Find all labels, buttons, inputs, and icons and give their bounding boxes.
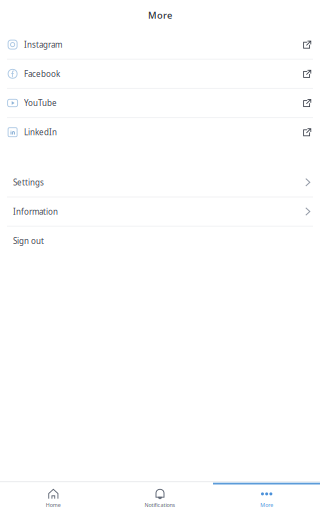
button[interactable]: Home xyxy=(0,481,107,512)
staticText: Notifications xyxy=(144,501,175,509)
button[interactable]: Settings xyxy=(0,168,320,196)
staticText: More xyxy=(148,9,172,21)
staticText: YouTube xyxy=(24,98,57,108)
button[interactable]: Information xyxy=(0,197,320,226)
staticText: Information xyxy=(13,206,58,217)
button[interactable]: LinkedIn xyxy=(0,118,320,146)
button[interactable]: More xyxy=(213,481,320,512)
button[interactable]: Instagram xyxy=(0,30,320,59)
button[interactable]: Notifications xyxy=(107,481,213,512)
staticText: Home xyxy=(46,501,61,509)
staticText: Settings xyxy=(13,177,44,188)
staticText: Facebook xyxy=(24,68,60,79)
staticText: Sign out xyxy=(13,235,44,246)
staticText: Instagram xyxy=(24,39,62,50)
button[interactable]: YouTube xyxy=(0,89,320,117)
staticText: More xyxy=(260,501,273,509)
staticText: LinkedIn xyxy=(24,127,57,137)
button[interactable]: Sign out xyxy=(0,227,320,255)
button[interactable]: Facebook xyxy=(0,60,320,88)
